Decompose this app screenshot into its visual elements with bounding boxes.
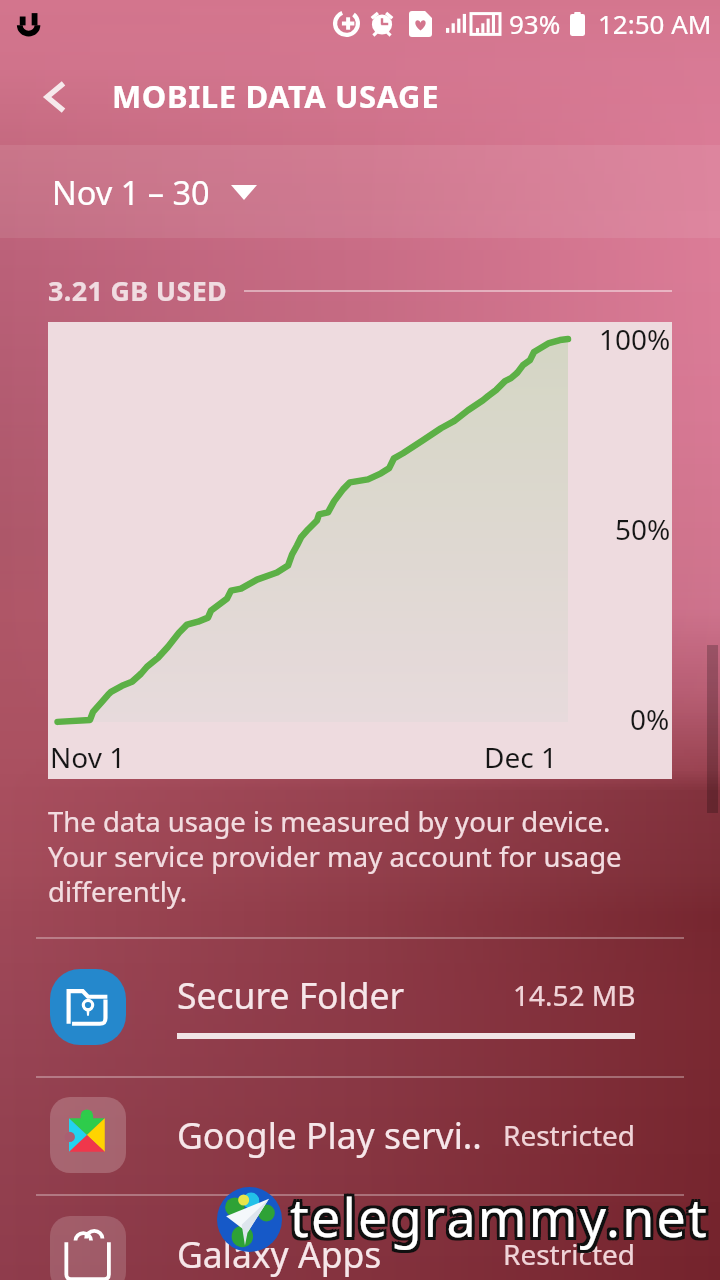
staticText: Dec 1	[484, 738, 557, 776]
staticText: Galaxy Apps	[177, 1230, 382, 1278]
staticText: 93%	[509, 6, 561, 41]
staticText: Google Play servi..	[177, 1111, 482, 1159]
staticText: telegrammy.net	[290, 1184, 710, 1255]
button[interactable]: Secure Folder	[0, 937, 720, 1076]
staticText: 14.52 MB	[513, 976, 636, 1014]
staticText: 12:50 AM	[598, 6, 712, 41]
staticText: Restricted	[503, 1116, 636, 1154]
staticText: telegrammy.net	[293, 1184, 713, 1255]
staticText: Nov 1 – 30	[52, 170, 210, 214]
button[interactable]: Back	[22, 65, 86, 129]
staticText: telegrammy.net	[287, 1184, 707, 1255]
staticText: 3.21 GB USED	[48, 272, 228, 309]
staticText: telegrammy.net	[290, 1178, 710, 1249]
button[interactable]: Google Play servi..	[0, 1076, 720, 1194]
staticText: Nov 1	[50, 738, 126, 776]
staticText: telegrammy.net	[287, 1178, 707, 1249]
button[interactable]: Galaxy Apps	[0, 1194, 720, 1280]
staticText: telegrammy.net	[287, 1181, 707, 1252]
staticText: telegrammy.net	[293, 1178, 713, 1249]
staticText: 0%	[630, 700, 670, 738]
staticText: Secure Folder	[177, 971, 405, 1019]
button[interactable]: Nov 1 – 30	[0, 145, 720, 238]
staticText: telegrammy.net	[290, 1181, 710, 1252]
staticText: 50%	[615, 510, 671, 548]
staticText: The data usage is measured by your devic…	[48, 803, 658, 911]
staticText: Restricted	[503, 1235, 636, 1273]
staticText: telegrammy.net	[293, 1181, 713, 1252]
staticText: 100%	[599, 320, 671, 358]
staticText: MOBILE DATA USAGE	[112, 75, 440, 117]
